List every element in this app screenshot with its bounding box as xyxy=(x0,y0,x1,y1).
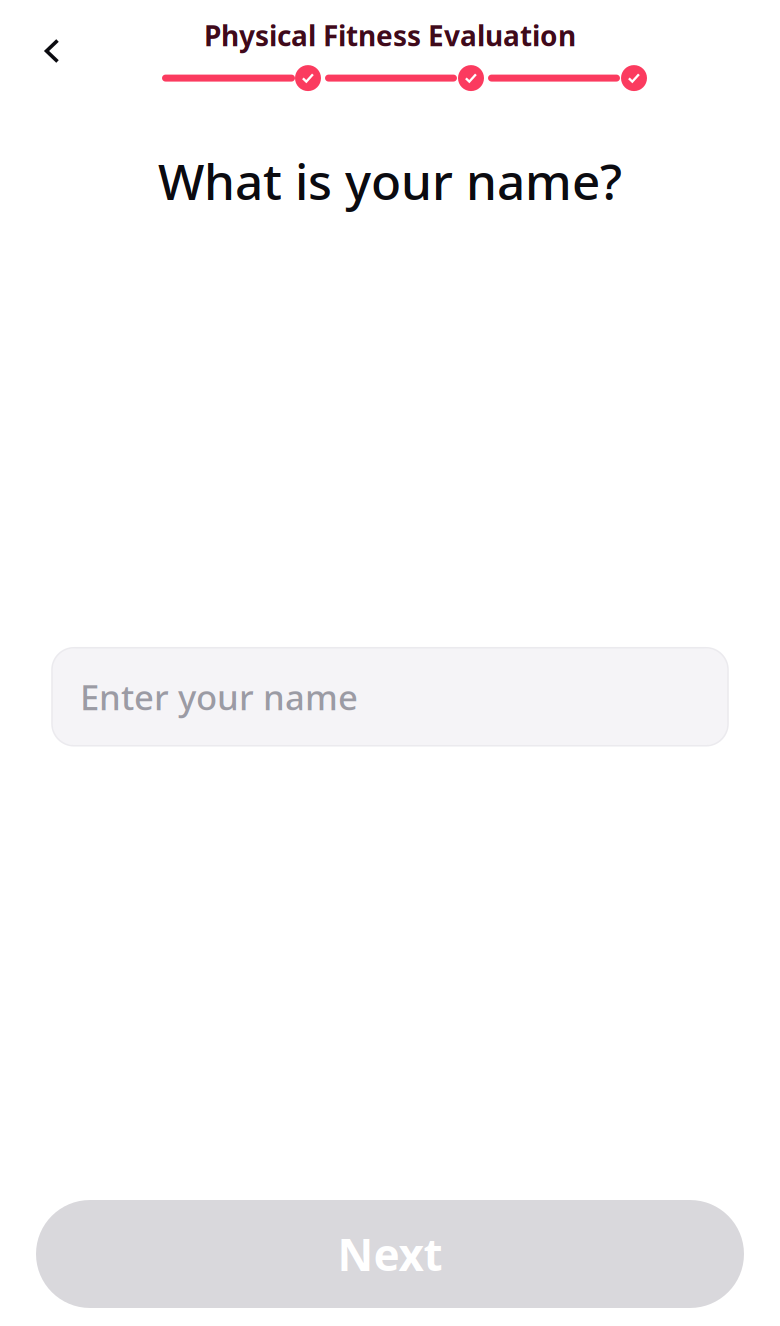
staticText: What is your name? xyxy=(158,148,622,213)
staticText: Enter your name xyxy=(80,674,358,720)
staticText: Physical Fitness Evaluation xyxy=(204,17,576,54)
button[interactable]: Back xyxy=(0,14,104,88)
staticText: Next xyxy=(337,1225,442,1283)
button[interactable]: Next xyxy=(36,1200,744,1308)
button[interactable]: Enter your name xyxy=(52,648,728,746)
